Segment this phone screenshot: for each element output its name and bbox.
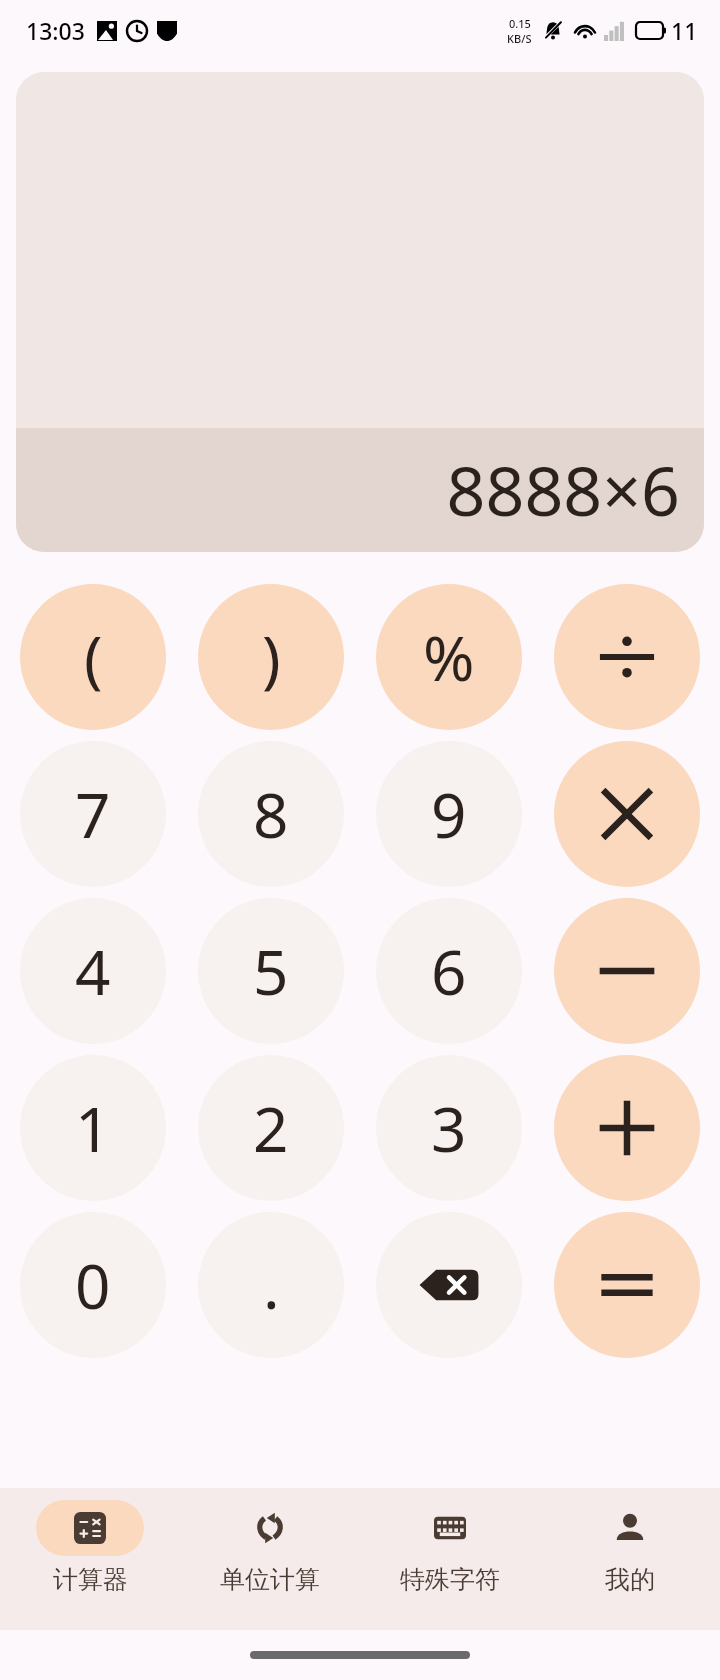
staticText: ): [262, 615, 281, 699]
staticText: 2: [253, 1086, 289, 1170]
staticText: 6: [431, 929, 467, 1013]
staticText: 0.15: [509, 16, 531, 31]
staticText: 4: [75, 929, 111, 1013]
staticText: 0: [75, 1243, 111, 1327]
staticText: .: [263, 1243, 280, 1327]
button[interactable]: 特殊字符: [360, 1488, 540, 1630]
staticText: 8888×6: [446, 443, 680, 536]
button[interactable]: 3: [376, 1055, 522, 1201]
staticText: 3: [431, 1086, 467, 1170]
button[interactable]: .: [198, 1212, 344, 1358]
staticText: 5: [253, 929, 289, 1013]
button[interactable]: Subtract: [554, 898, 700, 1044]
button[interactable]: 计算器: [0, 1488, 180, 1630]
staticText: 9: [431, 772, 467, 856]
button[interactable]: 我的: [540, 1488, 720, 1630]
button[interactable]: 8: [198, 741, 344, 887]
staticText: 1: [75, 1086, 111, 1170]
button[interactable]: Multiply: [554, 741, 700, 887]
staticText: (: [84, 615, 103, 699]
staticText: %: [423, 615, 475, 699]
staticText: KB/S: [507, 31, 532, 46]
button[interactable]: 0: [20, 1212, 166, 1358]
button[interactable]: ): [198, 584, 344, 730]
button[interactable]: 4: [20, 898, 166, 1044]
button[interactable]: Divide: [554, 584, 700, 730]
button[interactable]: 7: [20, 741, 166, 887]
button[interactable]: %: [376, 584, 522, 730]
button[interactable]: Add: [554, 1055, 700, 1201]
button[interactable]: 8888×6: [16, 72, 704, 552]
staticText: 计算器: [53, 1564, 128, 1595]
button[interactable]: 1: [20, 1055, 166, 1201]
button[interactable]: Backspace: [376, 1212, 522, 1358]
button[interactable]: Equals: [554, 1212, 700, 1358]
staticText: 11: [671, 15, 698, 46]
staticText: 单位计算: [220, 1564, 320, 1595]
button[interactable]: 单位计算: [180, 1488, 360, 1630]
staticText: 7: [75, 772, 111, 856]
staticText: 特殊字符: [400, 1564, 500, 1595]
button[interactable]: 5: [198, 898, 344, 1044]
button[interactable]: 6: [376, 898, 522, 1044]
staticText: 13:03: [26, 15, 85, 46]
staticText: 我的: [605, 1564, 655, 1595]
staticText: 8: [253, 772, 289, 856]
button[interactable]: 2: [198, 1055, 344, 1201]
button[interactable]: (: [20, 584, 166, 730]
button[interactable]: 9: [376, 741, 522, 887]
